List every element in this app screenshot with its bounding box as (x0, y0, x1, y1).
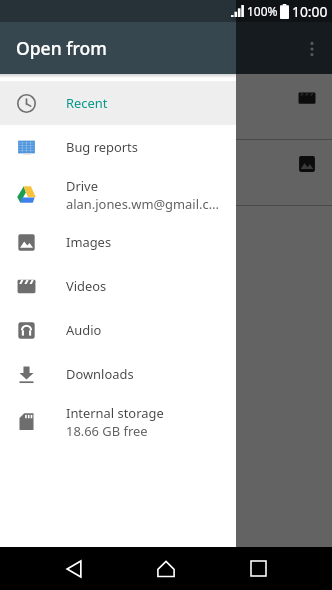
staticText: Downloads (66, 365, 134, 383)
button[interactable]: Downloads (0, 352, 236, 396)
button[interactable]: Back (52, 547, 96, 590)
staticText: Internal storage (66, 404, 164, 422)
staticText: 10:00 (292, 2, 328, 21)
staticText: Images (66, 233, 112, 251)
staticText: 100% (247, 3, 278, 19)
staticText: 18.66 GB free (66, 422, 148, 440)
button[interactable]: Videos (0, 264, 236, 308)
button[interactable]: Recent apps (236, 547, 280, 590)
button[interactable]: Home (144, 547, 188, 590)
staticText: Open from (16, 36, 107, 60)
staticText: Audio (66, 321, 102, 339)
button[interactable]: More options (291, 28, 332, 69)
staticText: Videos (66, 277, 107, 295)
button[interactable]: Recent (0, 81, 236, 125)
button[interactable]: Internal storage (0, 396, 236, 447)
staticText: Drive (66, 177, 98, 195)
staticText: Recent (66, 94, 108, 112)
button[interactable]: Bug reports (0, 125, 236, 169)
button[interactable]: Audio (0, 308, 236, 352)
staticText: Bug reports (66, 138, 138, 156)
button[interactable]: Images (0, 220, 236, 264)
staticText: alan.jones.wm@gmail.co… (66, 195, 225, 213)
button[interactable]: Drive (0, 169, 236, 220)
